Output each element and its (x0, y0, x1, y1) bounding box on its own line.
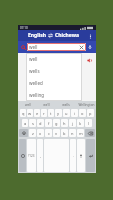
staticText: z (32, 131, 34, 136)
button[interactable]: wells (56, 101, 76, 108)
button[interactable]: k (77, 119, 84, 127)
button[interactable]: b (61, 129, 68, 137)
button[interactable]: well (27, 43, 86, 51)
button[interactable]: x (37, 129, 44, 137)
staticText: welling (29, 92, 45, 98)
button[interactable]: ?123 (27, 139, 36, 172)
staticText: n (71, 131, 74, 136)
staticText: 07:10 (20, 26, 28, 30)
staticText: wells (62, 103, 70, 107)
button[interactable]: d (37, 119, 44, 127)
staticText: f (48, 121, 50, 126)
button[interactable]: Shift (19, 129, 28, 137)
staticText: g (55, 121, 58, 126)
button[interactable]: Switch keyboard (19, 139, 26, 172)
button[interactable]: f (45, 119, 52, 127)
staticText: y (57, 111, 60, 116)
staticText: d (39, 121, 42, 126)
staticText: v (55, 131, 58, 136)
button[interactable]: More options (87, 33, 93, 39)
staticText: o (81, 111, 84, 116)
button[interactable]: o (79, 109, 86, 117)
button[interactable]: we'll (37, 101, 56, 108)
staticText: Chichewa (55, 32, 79, 39)
staticText: u (65, 111, 68, 116)
staticText: , (40, 153, 41, 158)
button[interactable]: Voice typing (77, 139, 85, 172)
button[interactable]: welled (26, 77, 82, 89)
button[interactable]: j (69, 119, 76, 127)
staticText: q (22, 111, 25, 116)
staticText: wells (29, 68, 40, 74)
button[interactable]: z (29, 129, 36, 137)
button[interactable]: i (71, 109, 78, 117)
staticText: p (89, 111, 92, 116)
button[interactable]: g (53, 119, 60, 127)
staticText: t (50, 111, 52, 116)
button[interactable]: r (41, 109, 47, 117)
button[interactable]: Clear text (79, 45, 84, 50)
button[interactable]: Wellington (76, 101, 96, 108)
staticText: welled (29, 80, 43, 86)
staticText: well (29, 56, 38, 62)
button[interactable]: English (18, 30, 96, 41)
staticText: English (28, 32, 46, 39)
button[interactable]: u (63, 109, 70, 117)
staticText: well (29, 44, 38, 50)
staticText: well (25, 103, 31, 107)
staticText: h (63, 121, 66, 126)
staticText: e (36, 111, 39, 116)
button[interactable]: y (55, 109, 62, 117)
staticText: j (72, 121, 74, 126)
button[interactable]: well (18, 101, 37, 108)
button[interactable]: Enter (86, 139, 95, 172)
button[interactable]: m (77, 129, 84, 137)
button[interactable]: h (61, 119, 68, 127)
staticText: Wellington (78, 103, 95, 107)
staticText: m (79, 131, 83, 136)
button[interactable]: w (27, 109, 33, 117)
staticText: ?123 (28, 154, 35, 158)
staticText: r (43, 111, 45, 116)
button[interactable]: v (53, 129, 60, 137)
button[interactable]: Pronounce (86, 57, 93, 64)
button[interactable]: Search (20, 44, 27, 51)
button[interactable]: Backspace (85, 129, 95, 137)
button[interactable]: t (48, 109, 54, 117)
staticText: b (63, 131, 66, 136)
staticText: k (79, 121, 82, 126)
staticText: . (73, 153, 74, 158)
button[interactable]: l (85, 119, 92, 127)
staticText: s (32, 121, 34, 126)
button[interactable]: c (45, 129, 52, 137)
staticText: a (24, 121, 27, 126)
button[interactable]: well (26, 53, 82, 65)
button[interactable]: p (87, 109, 94, 117)
other: Swap languages (48, 33, 53, 38)
button[interactable]: q (20, 109, 26, 117)
button[interactable]: welling (26, 89, 82, 101)
button[interactable]: n (69, 129, 76, 137)
button[interactable]: , (37, 139, 43, 172)
button[interactable]: wells (26, 65, 82, 77)
staticText: c (48, 131, 50, 136)
staticText: x (39, 131, 42, 136)
staticText: l (88, 121, 90, 126)
staticText: we'll (43, 103, 50, 107)
staticText: i (74, 111, 76, 116)
button[interactable]: Voice input (86, 43, 94, 51)
button[interactable]: a (22, 119, 28, 127)
button[interactable]: s (29, 119, 36, 127)
staticText: w (28, 111, 32, 116)
button[interactable]: e (34, 109, 40, 117)
